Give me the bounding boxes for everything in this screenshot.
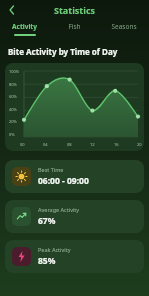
staticText: 12	[90, 142, 95, 147]
button[interactable]: Back	[4, 2, 20, 18]
staticText: 67%	[38, 215, 56, 227]
button[interactable]: Seasons	[99, 20, 149, 38]
button[interactable]: Activity	[0, 20, 49, 38]
staticText: Bite Activity by Time of Day	[8, 46, 118, 57]
button[interactable]: 100%	[5, 63, 144, 151]
staticText: 06:00 - 09:00	[38, 175, 89, 187]
button[interactable]: Average Activity	[5, 200, 144, 233]
staticText: Best Time	[38, 166, 64, 173]
button[interactable]: Peak Activity	[5, 240, 144, 273]
staticText: 40%	[9, 107, 17, 112]
staticText: 08	[67, 142, 72, 147]
staticText: Seasons	[111, 22, 137, 31]
staticText: 100%	[9, 69, 20, 74]
button[interactable]: Best Time	[5, 160, 144, 193]
staticText: 20	[137, 142, 142, 147]
staticText: Peak Activity	[38, 246, 71, 253]
staticText: 85%	[38, 255, 56, 267]
staticText: 20%	[9, 119, 17, 124]
staticText: 16	[114, 142, 119, 147]
button[interactable]: Fish	[49, 20, 99, 38]
staticText: 80%	[9, 82, 17, 87]
staticText: 00	[20, 142, 25, 147]
staticText: Activity	[12, 22, 37, 31]
staticText: Average Activity	[38, 206, 80, 213]
staticText: 04	[43, 142, 48, 147]
staticText: Fish	[68, 22, 81, 31]
staticText: 60%	[9, 94, 17, 99]
staticText: 0%	[9, 132, 15, 137]
staticText: Statistics	[54, 4, 96, 16]
